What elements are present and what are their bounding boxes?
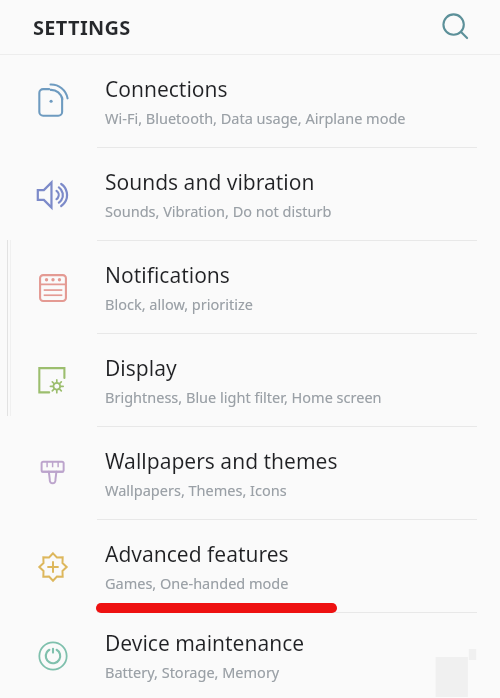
staticText: Wallpapers and themes: [105, 447, 338, 476]
staticText: Games, One-handed mode: [105, 573, 289, 593]
staticText: SETTINGS: [33, 14, 131, 41]
staticText: Brightness, Blue light filter, Home scre…: [105, 387, 382, 407]
staticText: Device maintenance: [105, 629, 305, 658]
staticText: Advanced features: [105, 540, 289, 569]
button[interactable]: Display: [0, 334, 500, 427]
button[interactable]: Advanced features: [0, 520, 500, 613]
staticText: Battery, Storage, Memory: [105, 662, 280, 682]
button[interactable]: Connections: [0, 55, 500, 148]
button[interactable]: Notifications: [0, 241, 500, 334]
staticText: Connections: [105, 75, 228, 104]
staticText: Sounds and vibration: [105, 168, 315, 197]
staticText: Sounds, Vibration, Do not disturb: [105, 201, 332, 221]
staticText: Notifications: [105, 261, 230, 290]
button[interactable]: Wallpapers and themes: [0, 427, 500, 520]
staticText: Wallpapers, Themes, Icons: [105, 480, 287, 500]
staticText: Display: [105, 354, 177, 383]
button[interactable]: Search: [434, 6, 478, 50]
staticText: Wi-Fi, Bluetooth, Data usage, Airplane m…: [105, 108, 406, 128]
button[interactable]: Device maintenance: [0, 613, 500, 698]
staticText: Block, allow, prioritize: [105, 294, 253, 314]
button[interactable]: Sounds and vibration: [0, 148, 500, 241]
